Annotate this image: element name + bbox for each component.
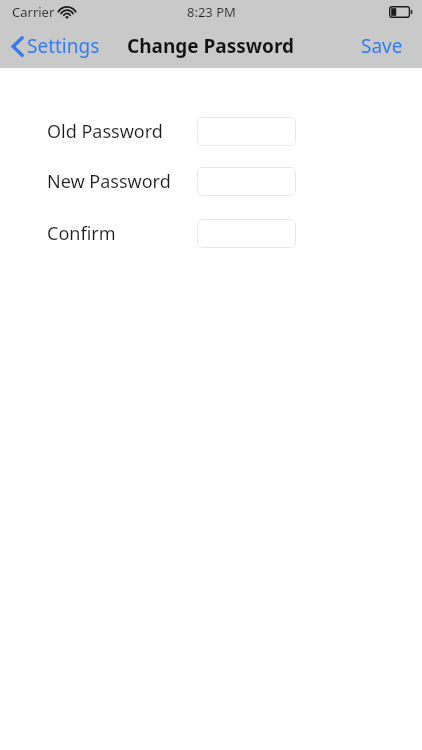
staticText: Change Password bbox=[127, 33, 295, 59]
staticText: Old Password bbox=[47, 119, 163, 144]
staticText: Carrier bbox=[12, 3, 55, 21]
button[interactable]: Settings bbox=[0, 24, 108, 68]
staticText: New Password bbox=[47, 169, 171, 194]
button[interactable]: Confirm bbox=[197, 219, 296, 248]
staticText: 8:23 PM bbox=[187, 3, 236, 21]
button[interactable]: Save bbox=[342, 24, 422, 68]
staticText: Save bbox=[361, 33, 403, 59]
button[interactable]: New Password bbox=[197, 167, 296, 196]
staticText: Settings bbox=[27, 33, 100, 59]
button[interactable]: Old Password bbox=[197, 117, 296, 146]
staticText: Confirm bbox=[47, 221, 116, 246]
